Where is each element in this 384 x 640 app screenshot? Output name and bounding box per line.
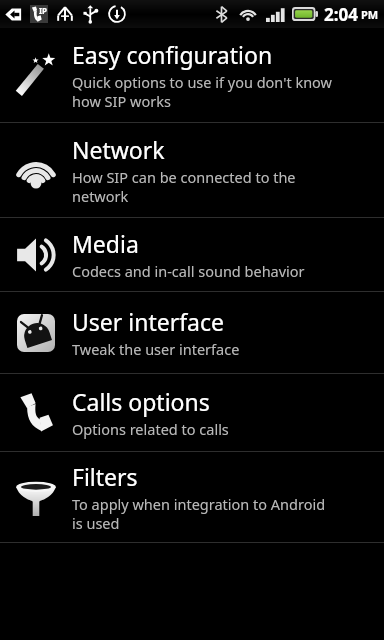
staticText: Media: [72, 228, 139, 259]
button[interactable]: User interface: [0, 292, 384, 373]
staticText: User interface: [72, 306, 225, 337]
staticText: PM: [361, 7, 379, 22]
button[interactable]: Media: [0, 218, 384, 291]
staticText: Network: [72, 134, 165, 165]
staticText: Codecs and in-call sound behavior: [72, 261, 305, 281]
staticText: 2:04: [324, 3, 358, 26]
staticText: IP: [39, 5, 48, 16]
staticText: Quick options to use if you don't know h…: [72, 72, 332, 111]
button[interactable]: Easy configuration: [0, 28, 384, 122]
staticText: How SIP can be connected to the network: [72, 167, 296, 206]
staticText: Options related to calls: [72, 419, 229, 439]
staticText: Calls options: [72, 386, 210, 417]
staticText: To apply when integration to Android is …: [72, 494, 326, 533]
staticText: Easy configuration: [72, 39, 273, 70]
button[interactable]: Network: [0, 123, 384, 217]
button[interactable]: Calls options: [0, 374, 384, 451]
button[interactable]: Filters: [0, 452, 384, 542]
staticText: Filters: [72, 461, 138, 492]
staticText: Tweak the user interface: [72, 339, 240, 359]
